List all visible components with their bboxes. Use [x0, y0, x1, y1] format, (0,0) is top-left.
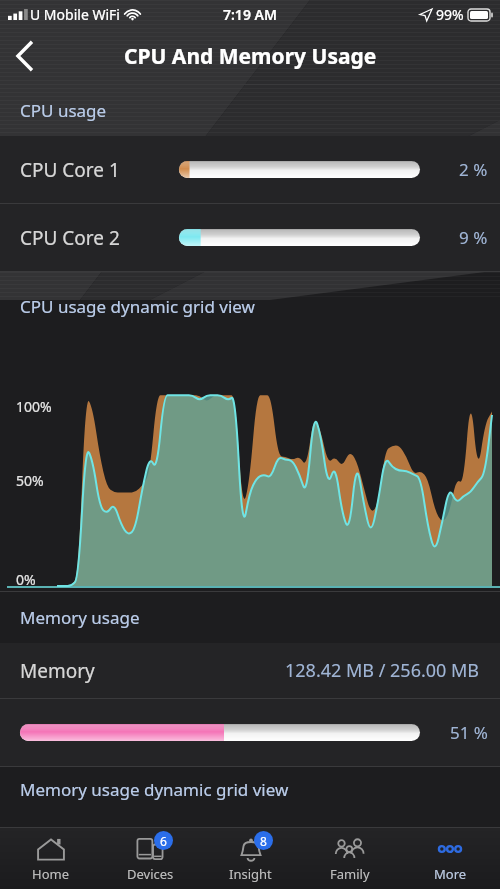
- staticText: Home: [32, 865, 69, 883]
- button[interactable]: 8: [200, 828, 300, 889]
- button[interactable]: Memory: [0, 643, 500, 698]
- button[interactable]: CPU Core 1: [0, 136, 500, 203]
- button[interactable]: 6: [100, 828, 200, 889]
- staticText: 99%: [436, 5, 464, 24]
- button[interactable]: 51 %: [0, 699, 500, 766]
- staticText: 100%: [16, 397, 52, 416]
- staticText: U Mobile WiFi: [30, 5, 120, 24]
- staticText: 128.42 MB / 256.00 MB: [285, 658, 480, 683]
- staticText: CPU usage: [20, 99, 107, 122]
- staticText: CPU usage dynamic grid view: [20, 295, 255, 318]
- button[interactable]: Back: [0, 32, 48, 80]
- staticText: Devices: [127, 865, 174, 883]
- staticText: 0%: [16, 570, 36, 589]
- staticText: CPU And Memory Usage: [124, 42, 377, 71]
- staticText: Memory usage dynamic grid view: [20, 778, 289, 801]
- button[interactable]: CPU Core 2: [0, 204, 500, 271]
- staticText: 9 %: [459, 226, 488, 249]
- staticText: 7:19 AM: [223, 5, 277, 24]
- button[interactable]: Home: [0, 828, 100, 889]
- staticText: 51 %: [450, 721, 488, 744]
- staticText: Memory usage: [20, 606, 140, 629]
- staticText: Family: [330, 865, 370, 883]
- staticText: CPU Core 1: [20, 157, 120, 183]
- staticText: 50%: [16, 471, 44, 490]
- staticText: Memory: [20, 658, 95, 684]
- staticText: More: [434, 865, 467, 883]
- staticText: 2 %: [459, 158, 488, 181]
- button[interactable]: Family: [300, 828, 400, 889]
- staticText: 8: [260, 833, 267, 849]
- staticText: Insight: [229, 865, 272, 883]
- button[interactable]: More: [400, 828, 500, 889]
- staticText: 6: [160, 833, 167, 849]
- staticText: CPU Core 2: [20, 225, 120, 251]
